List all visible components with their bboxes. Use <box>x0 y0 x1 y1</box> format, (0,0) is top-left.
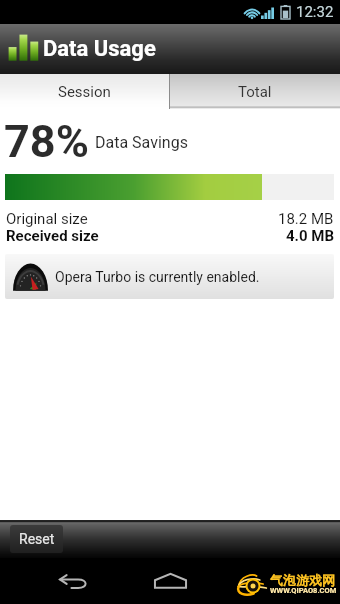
button[interactable]: Home <box>144 558 196 604</box>
staticText: Received size <box>6 227 99 245</box>
staticText: WWW.QIPAO8.COM <box>270 586 337 595</box>
staticText: 气泡游戏网 <box>270 572 335 588</box>
staticText: Session <box>58 83 111 101</box>
staticText: Data Savings <box>95 133 188 152</box>
button[interactable]: Total <box>170 74 340 109</box>
staticText: Reset <box>19 531 55 547</box>
button[interactable]: Reset <box>10 525 63 553</box>
staticText: Original size <box>6 210 88 228</box>
staticText: Data Usage <box>43 36 156 62</box>
staticText: 4.0 MB <box>286 227 334 245</box>
button[interactable]: Back <box>48 558 100 604</box>
staticText: Total <box>238 83 272 101</box>
button[interactable]: Opera Turbo is currently enabled. <box>5 254 334 299</box>
staticText: 12:32 <box>296 3 334 21</box>
staticText: 78% <box>4 115 89 168</box>
staticText: 18.2 MB <box>278 210 334 228</box>
staticText: Opera Turbo is currently enabled. <box>55 269 260 285</box>
button[interactable]: Session <box>0 74 169 109</box>
